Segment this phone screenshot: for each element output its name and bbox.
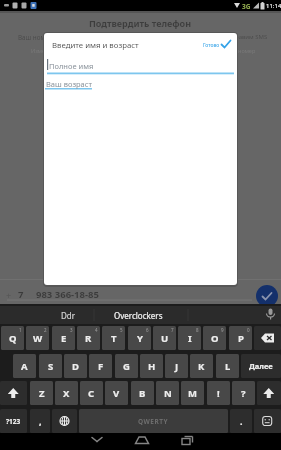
button[interactable]: G [115, 354, 138, 378]
staticText: F [98, 360, 104, 373]
staticText: Готово [203, 42, 220, 49]
staticText: 2 [44, 327, 47, 333]
button[interactable]: Ваш возраст [45, 77, 233, 93]
button[interactable]: QWERTY [79, 409, 228, 433]
button[interactable]: J [165, 354, 188, 378]
staticText: + [6, 289, 12, 301]
staticText: ? [241, 387, 246, 400]
button[interactable]: H [140, 354, 163, 378]
staticText: W [33, 332, 43, 345]
button[interactable]: U [153, 326, 176, 350]
staticText: G [123, 360, 130, 373]
button[interactable]: ? [232, 381, 255, 405]
button[interactable]: T [102, 326, 125, 350]
button[interactable]: F [89, 354, 112, 378]
staticText: , [39, 415, 42, 427]
button[interactable]: Z [30, 381, 53, 405]
staticText: ! [217, 387, 220, 400]
staticText: Изменить [31, 47, 58, 54]
staticText: 8 [196, 327, 199, 333]
staticText: QWERTY [138, 417, 169, 426]
button[interactable] [131, 433, 153, 449]
staticText: 3 [70, 327, 73, 333]
staticText: . [240, 415, 243, 427]
button[interactable] [254, 326, 281, 350]
staticText: R [85, 332, 92, 345]
staticText: 4 [95, 327, 98, 333]
staticText: N [164, 387, 172, 400]
staticText: V [113, 387, 120, 400]
staticText: Введите имя и возраст [52, 40, 139, 51]
staticText: X [63, 387, 70, 400]
staticText: Ваш возраст [46, 79, 92, 89]
button[interactable]: Y [128, 326, 151, 350]
staticText: равим SMS [235, 33, 268, 41]
button[interactable]: M [181, 381, 204, 405]
button[interactable]: ! [207, 381, 230, 405]
button[interactable]: Далее [241, 354, 281, 378]
button[interactable]: A [13, 354, 36, 378]
button[interactable]: . [230, 409, 252, 433]
button[interactable] [0, 381, 27, 405]
staticText: E [61, 332, 67, 345]
staticText: M [188, 387, 197, 400]
staticText: 11:14 [266, 2, 281, 10]
staticText: P [238, 332, 244, 345]
staticText: Overclockers [114, 310, 163, 321]
staticText: Ваш номер [18, 33, 53, 42]
button[interactable] [52, 409, 77, 433]
staticText: Подтвердить телефон [89, 17, 192, 29]
button[interactable] [254, 409, 281, 433]
staticText: 7 [18, 288, 24, 301]
button[interactable]: ?123 [0, 409, 27, 433]
button[interactable]: R [77, 326, 100, 350]
staticText: Q [9, 332, 17, 345]
staticText: Далее [249, 361, 273, 371]
button[interactable]: P [229, 326, 252, 350]
button[interactable]: E [52, 326, 75, 350]
button[interactable] [176, 433, 198, 449]
staticText: J [175, 360, 179, 373]
staticText: Z [39, 387, 45, 400]
button[interactable]: D [64, 354, 87, 378]
staticText: H [148, 360, 156, 373]
button[interactable]: C [80, 381, 103, 405]
staticText: S [48, 360, 54, 373]
button[interactable]: O [203, 326, 226, 350]
staticText: 9 [221, 327, 224, 333]
button[interactable]: , [30, 409, 50, 433]
staticText: T [111, 332, 117, 345]
staticText: ?123 [6, 417, 21, 426]
staticText: B [139, 387, 146, 400]
button[interactable] [256, 285, 278, 307]
button[interactable]: S [39, 354, 62, 378]
staticText: O [211, 332, 219, 345]
button[interactable]: N [156, 381, 179, 405]
staticText: Полное имя [49, 61, 94, 71]
button[interactable] [0, 306, 281, 324]
button[interactable]: W [26, 326, 49, 350]
button[interactable] [86, 433, 108, 449]
button[interactable]: Готово [196, 37, 234, 51]
staticText: 6 [146, 327, 149, 333]
staticText: Ddr [61, 310, 76, 321]
staticText: D [72, 360, 79, 373]
button[interactable]: L [216, 354, 239, 378]
staticText: 3G [242, 2, 251, 11]
staticText: 0 [247, 327, 250, 333]
button[interactable]: Q [1, 326, 24, 350]
staticText: номер [238, 47, 256, 54]
button[interactable]: K [190, 354, 213, 378]
button[interactable]: X [55, 381, 78, 405]
button[interactable] [257, 381, 281, 405]
staticText: 5 [120, 327, 123, 333]
staticText: 7 [171, 327, 174, 333]
staticText: K [198, 360, 205, 373]
button[interactable]: V [105, 381, 128, 405]
staticText: 983 366-18-85 [36, 288, 99, 301]
button[interactable]: Полное имя [47, 57, 235, 75]
staticText: Y [137, 332, 143, 345]
staticText: L [225, 360, 231, 373]
button[interactable]: B [131, 381, 154, 405]
button[interactable]: I [178, 326, 201, 350]
